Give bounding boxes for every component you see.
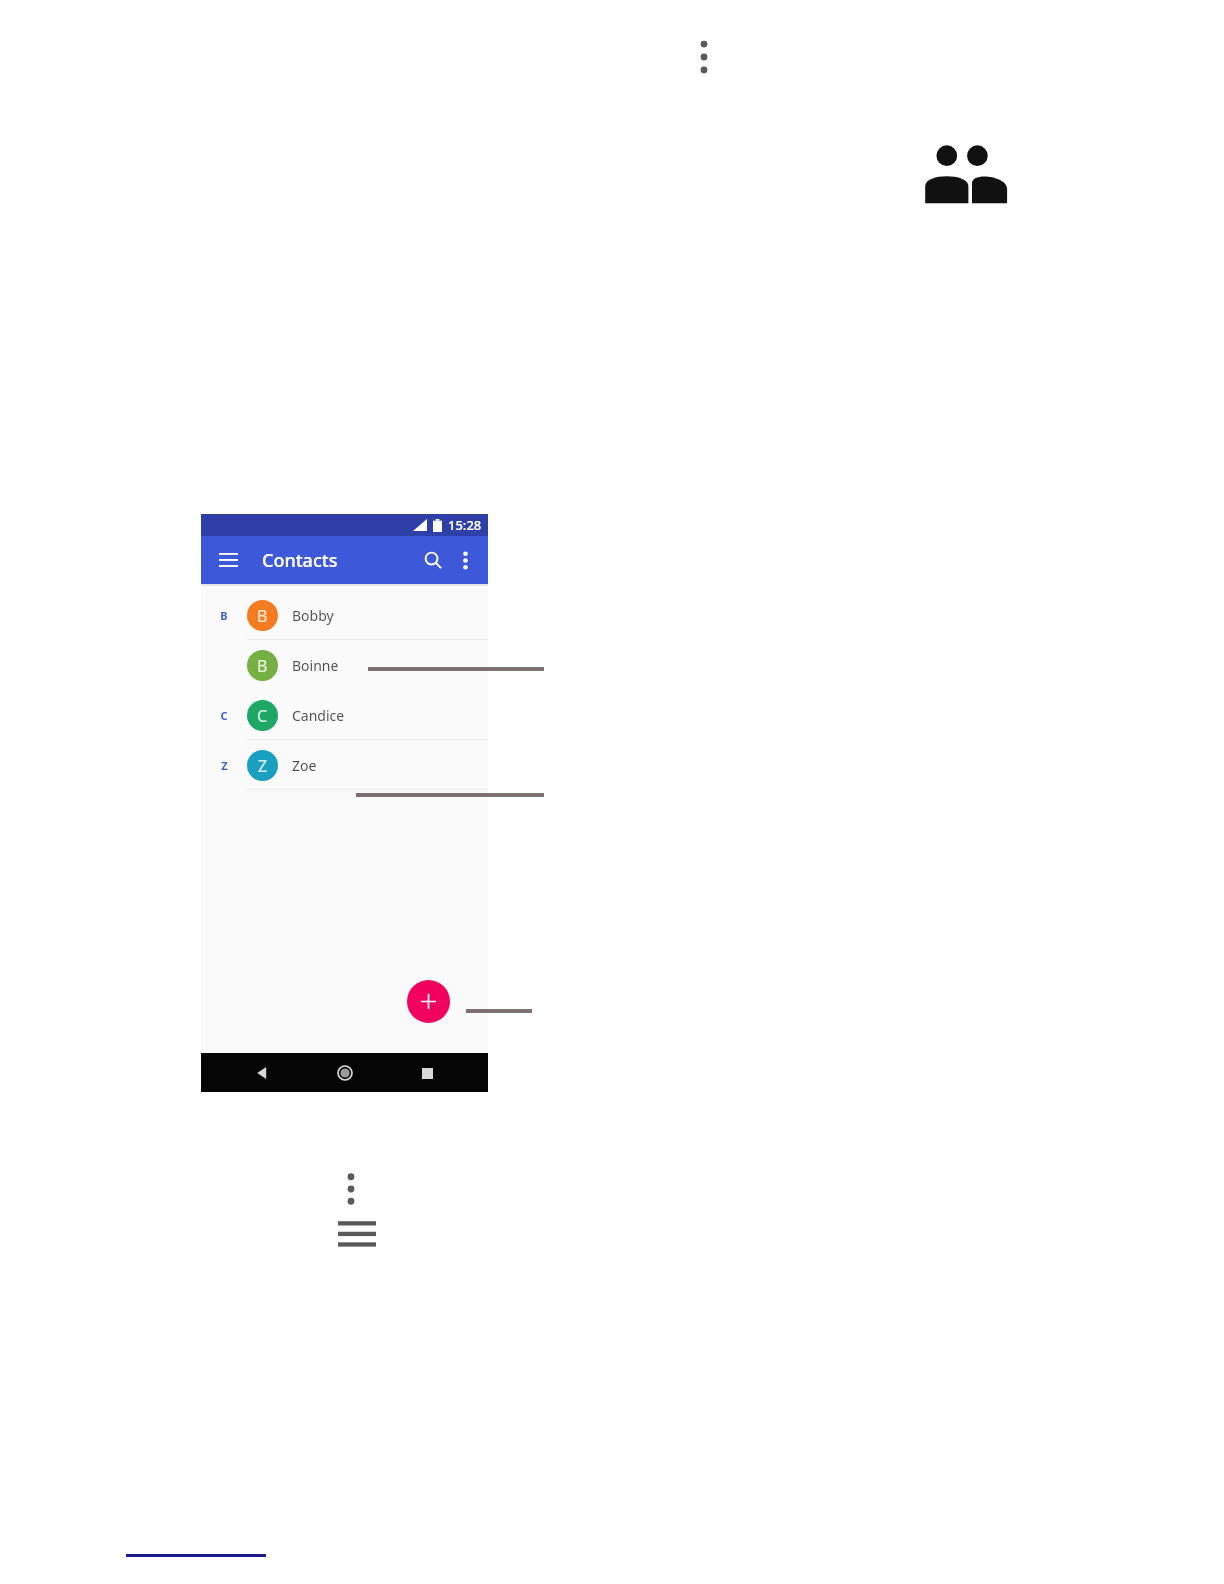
staticText: C xyxy=(220,708,228,723)
button[interactable]: Navigation drawer legend xyxy=(338,1218,376,1250)
button[interactable]: C xyxy=(201,690,488,740)
button[interactable]: Z xyxy=(201,740,488,790)
staticText: B xyxy=(220,608,228,623)
staticText: B xyxy=(257,655,268,677)
button[interactable]: Search xyxy=(416,543,450,577)
staticText: Candice xyxy=(292,706,345,725)
button[interactable]: Home xyxy=(332,1060,358,1086)
button[interactable]: Add contact xyxy=(407,980,450,1023)
button[interactable]: B xyxy=(201,640,488,690)
staticText: Z xyxy=(258,755,268,777)
button[interactable]: More options xyxy=(693,38,715,76)
button[interactable]: Open navigation drawer xyxy=(215,547,241,573)
staticText: B xyxy=(257,605,268,627)
staticText: 15:28 xyxy=(448,516,482,534)
staticText: Boinne xyxy=(292,656,339,675)
staticText: Contacts xyxy=(262,548,338,573)
staticText: Zoe xyxy=(292,756,317,775)
staticText: Bobby xyxy=(292,606,334,625)
staticText: Z xyxy=(221,758,228,773)
button[interactable]: B xyxy=(201,590,488,640)
button[interactable]: Recent apps xyxy=(414,1060,440,1086)
staticText: C xyxy=(257,705,268,727)
button[interactable]: Back xyxy=(249,1060,275,1086)
button[interactable]: Overflow menu legend xyxy=(341,1172,361,1206)
button[interactable]: Contacts group xyxy=(918,137,1008,209)
button[interactable]: More options xyxy=(450,545,480,575)
